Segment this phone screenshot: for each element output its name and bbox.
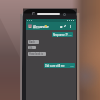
button[interactable]: Did sure still me	[44, 63, 75, 68]
button[interactable]: Response ??	[52, 32, 73, 37]
staticText: online	[33, 27, 40, 30]
staticText: Did sure still me	[45, 64, 65, 68]
staticText: Back off	[29, 40, 38, 44]
button[interactable]: Call	[64, 25, 66, 27]
button[interactable]: How look is bit	[28, 52, 46, 56]
staticText: Ok	[29, 46, 33, 49]
staticText: How look is bit	[29, 52, 45, 56]
button[interactable]: Ok	[28, 46, 36, 49]
button[interactable]: Back off	[28, 40, 39, 44]
button[interactable]: Video call	[60, 26, 63, 28]
staticText: 14:2	[70, 65, 74, 67]
staticText: 14:2	[68, 34, 72, 36]
staticText: Alexander	[33, 24, 49, 28]
staticText: Response ??	[53, 33, 68, 37]
button[interactable]	[26, 22, 76, 30]
